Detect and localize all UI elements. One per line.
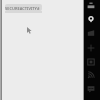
button[interactable]: Media xyxy=(87,29,95,37)
button[interactable]: Move xyxy=(87,44,95,52)
staticText: SECUREACTIVITY#B.IT xyxy=(5,6,42,11)
button[interactable]: Location xyxy=(87,15,95,23)
button[interactable]: Screen xyxy=(87,58,95,66)
button[interactable]: Devices xyxy=(87,2,95,10)
button[interactable]: Messages xyxy=(87,85,95,93)
button[interactable]: SECUREACTIVITY#B.IT xyxy=(5,4,42,11)
button[interactable]: Network xyxy=(87,71,95,79)
